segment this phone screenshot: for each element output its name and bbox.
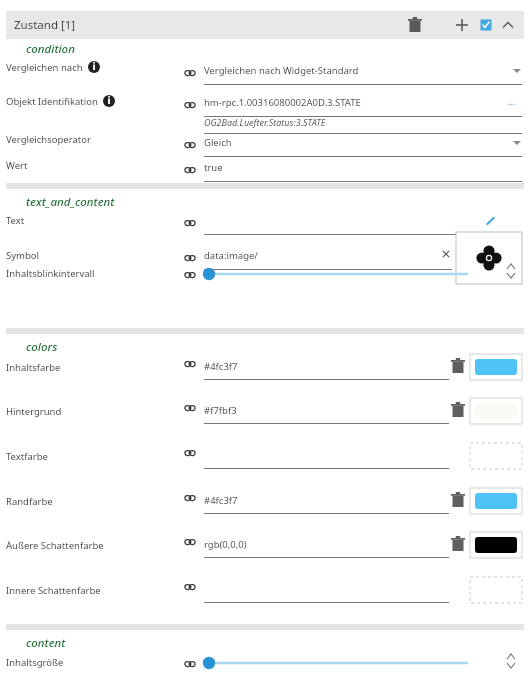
button[interactable]: Verknüpfen xyxy=(183,580,197,594)
button[interactable]: Hinzufügen xyxy=(452,15,472,35)
button[interactable]: #4fc3f7 xyxy=(204,358,449,380)
button[interactable]: Farbe löschen xyxy=(451,493,465,507)
staticText: Wert xyxy=(6,159,28,172)
staticText: #4fc3f7 xyxy=(204,360,238,373)
staticText: Objekt Identifikation xyxy=(6,95,98,108)
staticText: text_and_content xyxy=(26,194,115,210)
button[interactable]: Info xyxy=(103,95,115,107)
button[interactable]: Farbe wählen xyxy=(470,488,522,514)
button[interactable]: Schieberegler xyxy=(201,653,471,673)
button[interactable]: rgb(0,0,0) xyxy=(204,536,449,558)
button[interactable]: Wert ändern xyxy=(500,648,522,674)
staticText: Randfarbe xyxy=(6,495,53,508)
staticText: ... xyxy=(508,95,516,107)
staticText: Vergleichsoperator xyxy=(6,133,91,146)
button[interactable]: Aktiv xyxy=(476,15,496,35)
staticText: Symbol xyxy=(6,249,39,262)
button[interactable]: Vergleichen nach Widget-Standard xyxy=(204,63,522,85)
staticText: Text xyxy=(6,214,25,227)
button[interactable]: Bearbeiten xyxy=(484,214,498,228)
staticText: condition xyxy=(26,41,75,57)
staticText: Vergleichen nach xyxy=(6,61,83,74)
button[interactable] xyxy=(204,581,449,603)
button[interactable]: Info xyxy=(88,61,100,73)
button[interactable]: Symbolvorschau xyxy=(456,232,522,284)
staticText: Äußere Schattenfarbe xyxy=(6,539,104,552)
button[interactable]: Verknüpfen xyxy=(183,446,197,460)
button[interactable]: Verknüpfen xyxy=(183,268,197,282)
button[interactable]: Schieberegler xyxy=(201,264,471,284)
staticText: Hintergrund xyxy=(6,405,62,418)
staticText: hm-rpc.1.00316080002A0D.3.STATE xyxy=(204,96,498,109)
staticText: data:image/svg+xml;base64,PHN2ZyB4bWxucz… xyxy=(204,249,428,262)
button[interactable]: Farbe wählen xyxy=(470,354,522,380)
button[interactable]: Farbe löschen xyxy=(451,403,465,417)
staticText: #f7fbf3 xyxy=(204,404,237,417)
button[interactable]: Verknüpfen xyxy=(183,138,197,152)
staticText: content xyxy=(26,635,66,651)
button[interactable]: Gleich xyxy=(204,135,522,157)
button[interactable]: Farbe löschen xyxy=(451,537,465,551)
button[interactable] xyxy=(204,213,522,235)
button[interactable]: Farbe wählen xyxy=(470,398,522,424)
button[interactable]: Farbe wählen xyxy=(470,532,522,558)
button[interactable]: Farbe wählen xyxy=(470,443,522,469)
button[interactable]: true xyxy=(204,160,522,182)
staticText: OG2Bad.Luefter.Status:3.STATE xyxy=(204,116,326,128)
staticText: Gleich xyxy=(204,136,498,149)
button[interactable] xyxy=(204,447,449,469)
button[interactable]: #f7fbf3 xyxy=(204,402,449,424)
button[interactable]: Verknüpfen xyxy=(183,535,197,549)
staticText: colors xyxy=(26,339,58,355)
staticText: Inhaltsblinkintervall xyxy=(6,267,95,280)
staticText: rgb(0,0,0) xyxy=(204,538,247,551)
staticText: Inhaltsgröße xyxy=(6,656,64,669)
staticText: Vergleichen nach Widget-Standard xyxy=(204,64,498,77)
button[interactable]: Verknüpfen xyxy=(183,163,197,177)
button[interactable]: Einklappen xyxy=(498,15,518,35)
button[interactable]: Farbe wählen xyxy=(470,577,522,603)
button[interactable]: hm-rpc.1.00316080002A0D.3.STATE xyxy=(204,95,522,117)
button[interactable]: Verknüpfen xyxy=(183,657,197,671)
button[interactable]: Verknüpfen xyxy=(183,357,197,371)
button[interactable]: Verknüpfen xyxy=(183,491,197,505)
button[interactable]: Löschen xyxy=(440,248,452,260)
staticText: true xyxy=(204,161,498,174)
staticText: #4fc3f7 xyxy=(204,494,238,507)
button[interactable]: Verknüpfen xyxy=(183,98,197,112)
button[interactable]: Wert ändern xyxy=(500,258,522,284)
button[interactable]: Farbe löschen xyxy=(451,359,465,373)
button[interactable]: Verknüpfen xyxy=(183,216,197,230)
staticText: Inhaltsfarbe xyxy=(6,361,61,374)
button[interactable]: Verknüpfen xyxy=(183,251,197,265)
staticText: Zustand [1] xyxy=(14,17,76,33)
button[interactable]: Zustand [1] xyxy=(6,11,524,39)
staticText: Textfarbe xyxy=(6,450,48,463)
button[interactable]: Verknüpfen xyxy=(183,66,197,80)
button[interactable]: #4fc3f7 xyxy=(204,492,449,514)
staticText: Innere Schattenfarbe xyxy=(6,584,101,597)
button[interactable]: Verknüpfen xyxy=(183,401,197,415)
button[interactable]: Löschen xyxy=(404,14,426,36)
button[interactable]: data:image/svg+xml;base64,PHN2ZyB4bWxucz… xyxy=(204,248,452,270)
